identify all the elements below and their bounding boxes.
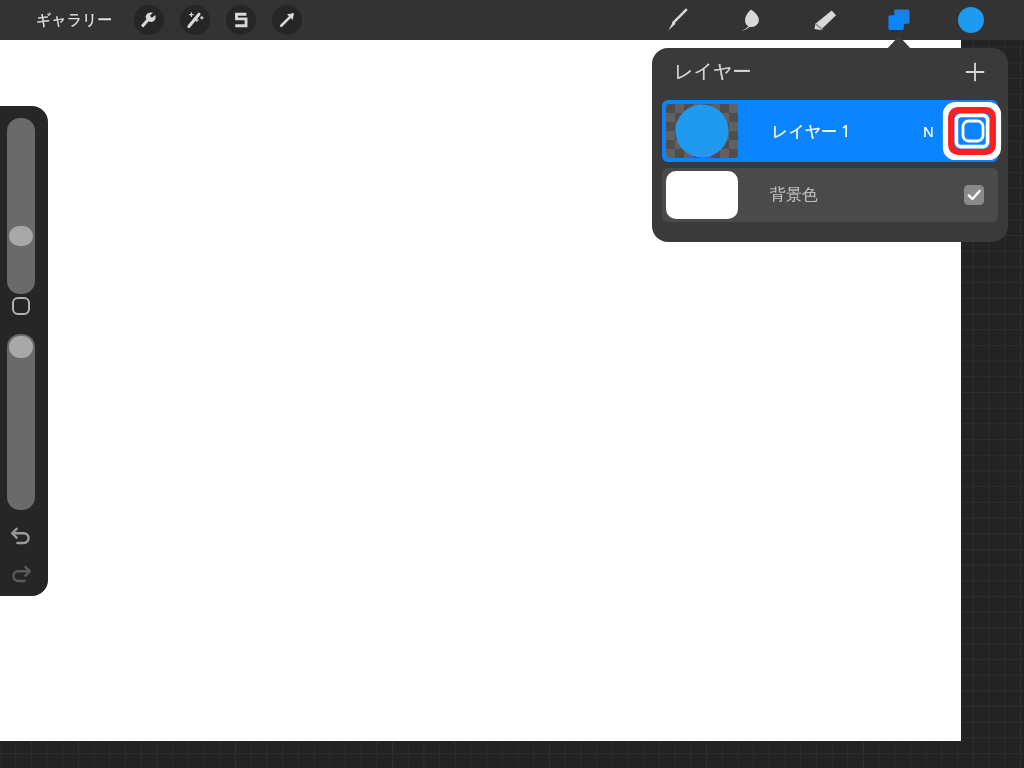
button[interactable]: Undo (6, 520, 36, 550)
button[interactable]: Layer visibility (960, 118, 986, 144)
staticText: レイヤー (674, 60, 752, 84)
staticText: ギャラリー (36, 11, 113, 30)
button[interactable]: Eraser (808, 3, 842, 37)
button[interactable]: Brush size (7, 118, 35, 294)
button[interactable]: Magic wand (180, 5, 210, 35)
button[interactable]: Opacity (7, 334, 35, 510)
button[interactable]: レイヤー 1 (662, 100, 998, 162)
staticText: 背景色 (770, 185, 818, 205)
button[interactable]: Background visibility (962, 183, 986, 207)
button[interactable]: Modify (10, 295, 32, 317)
button[interactable]: Transform (272, 5, 302, 35)
staticText: レイヤー 1 (772, 120, 851, 142)
button[interactable]: Smudge (734, 3, 768, 37)
button[interactable]: 背景色 (662, 168, 998, 222)
button[interactable]: ギャラリー (30, 7, 119, 34)
button[interactable]: Color (956, 5, 986, 35)
button[interactable]: Brush (660, 3, 694, 37)
button[interactable]: Redo (6, 558, 36, 588)
button[interactable]: Adjustments (134, 5, 164, 35)
button[interactable]: Layers (882, 3, 916, 37)
button[interactable]: Add layer (960, 57, 990, 87)
button[interactable]: Selection (226, 5, 256, 35)
staticText: N (923, 122, 934, 141)
